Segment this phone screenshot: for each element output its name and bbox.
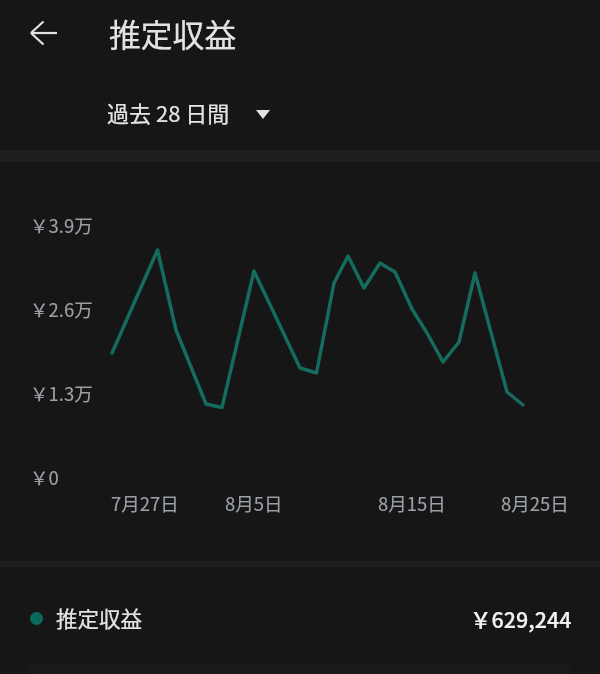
staticText: 8月15日: [378, 490, 446, 517]
button[interactable]: 推定収益: [0, 580, 600, 656]
button[interactable]: 過去 28 日間: [97, 90, 282, 134]
staticText: ￥2.6万: [30, 296, 93, 323]
staticText: ￥3.9万: [30, 212, 93, 239]
staticText: 過去 28 日間: [107, 96, 230, 128]
staticText: 7月27日: [111, 490, 179, 517]
staticText: 8月25日: [501, 490, 569, 517]
staticText: 8月5日: [225, 490, 283, 517]
button[interactable]: Back: [18, 7, 70, 59]
staticText: ￥629,244: [470, 603, 572, 634]
staticText: 推定収益: [109, 10, 237, 56]
staticText: ￥1.3万: [30, 380, 93, 407]
staticText: 推定収益: [56, 602, 143, 633]
staticText: ￥0: [30, 464, 59, 491]
